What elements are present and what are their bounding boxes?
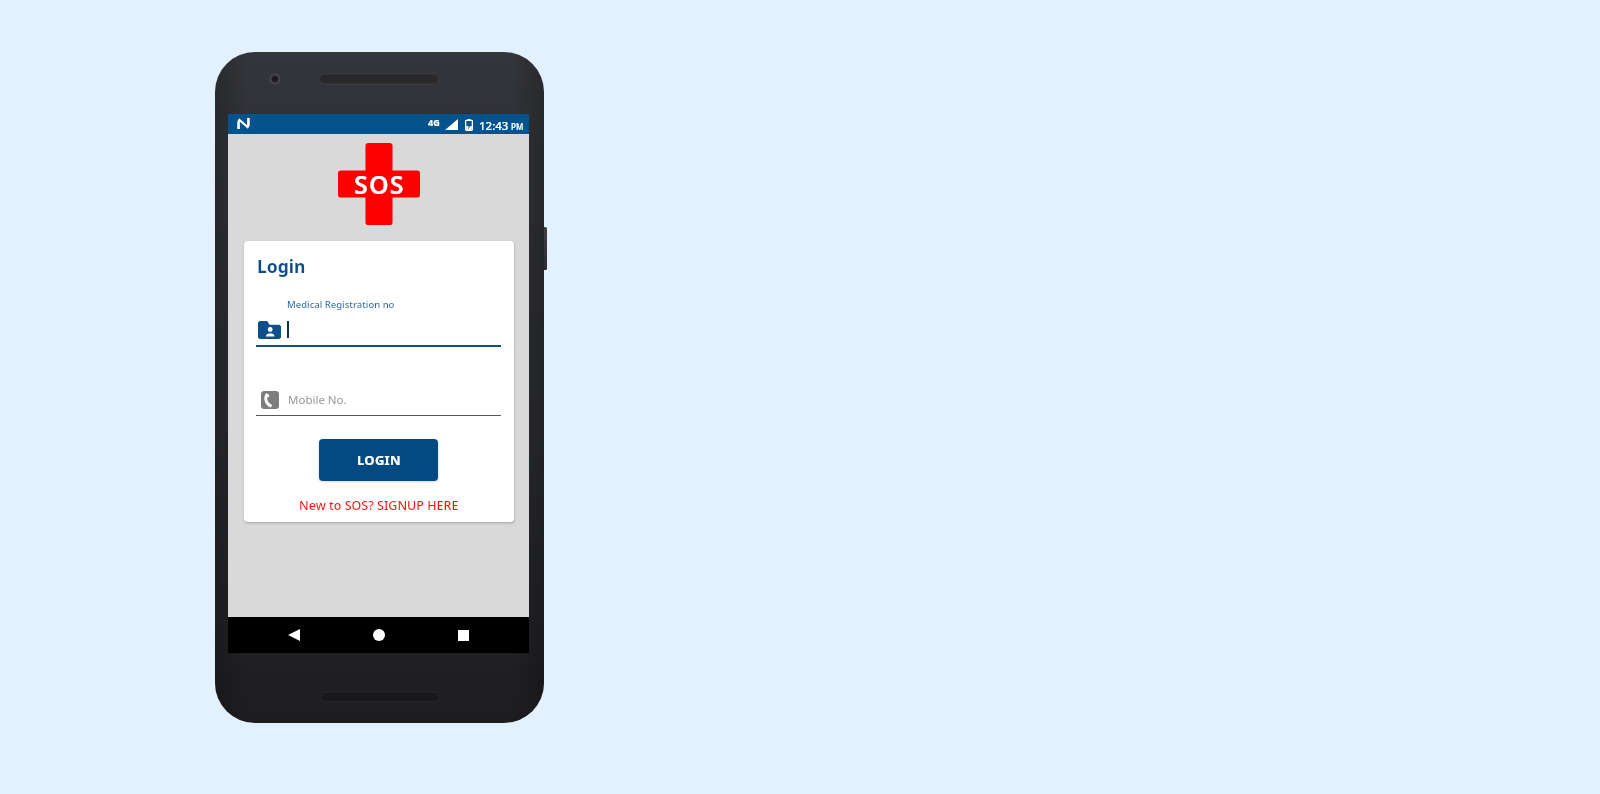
staticText: New to SOS? SIGNUP HERE — [299, 497, 459, 514]
staticText: SOS — [354, 167, 405, 201]
staticText: PM — [511, 121, 524, 132]
button[interactable]: Back — [244, 617, 344, 653]
button[interactable]: New to SOS? SIGNUP HERE — [295, 495, 463, 516]
button[interactable]: LOGIN — [319, 439, 438, 481]
staticText: Medical Registration no — [287, 298, 395, 311]
staticText: Mobile No. — [288, 392, 347, 408]
button[interactable]: Recent apps — [413, 617, 513, 653]
other: SOS emergency logo — [338, 143, 420, 225]
button[interactable]: Home — [328, 617, 429, 653]
staticText: 12:43 — [479, 118, 509, 134]
staticText: LOGIN — [357, 451, 401, 469]
staticText: 4G — [428, 116, 440, 128]
staticText: Login — [257, 254, 306, 278]
